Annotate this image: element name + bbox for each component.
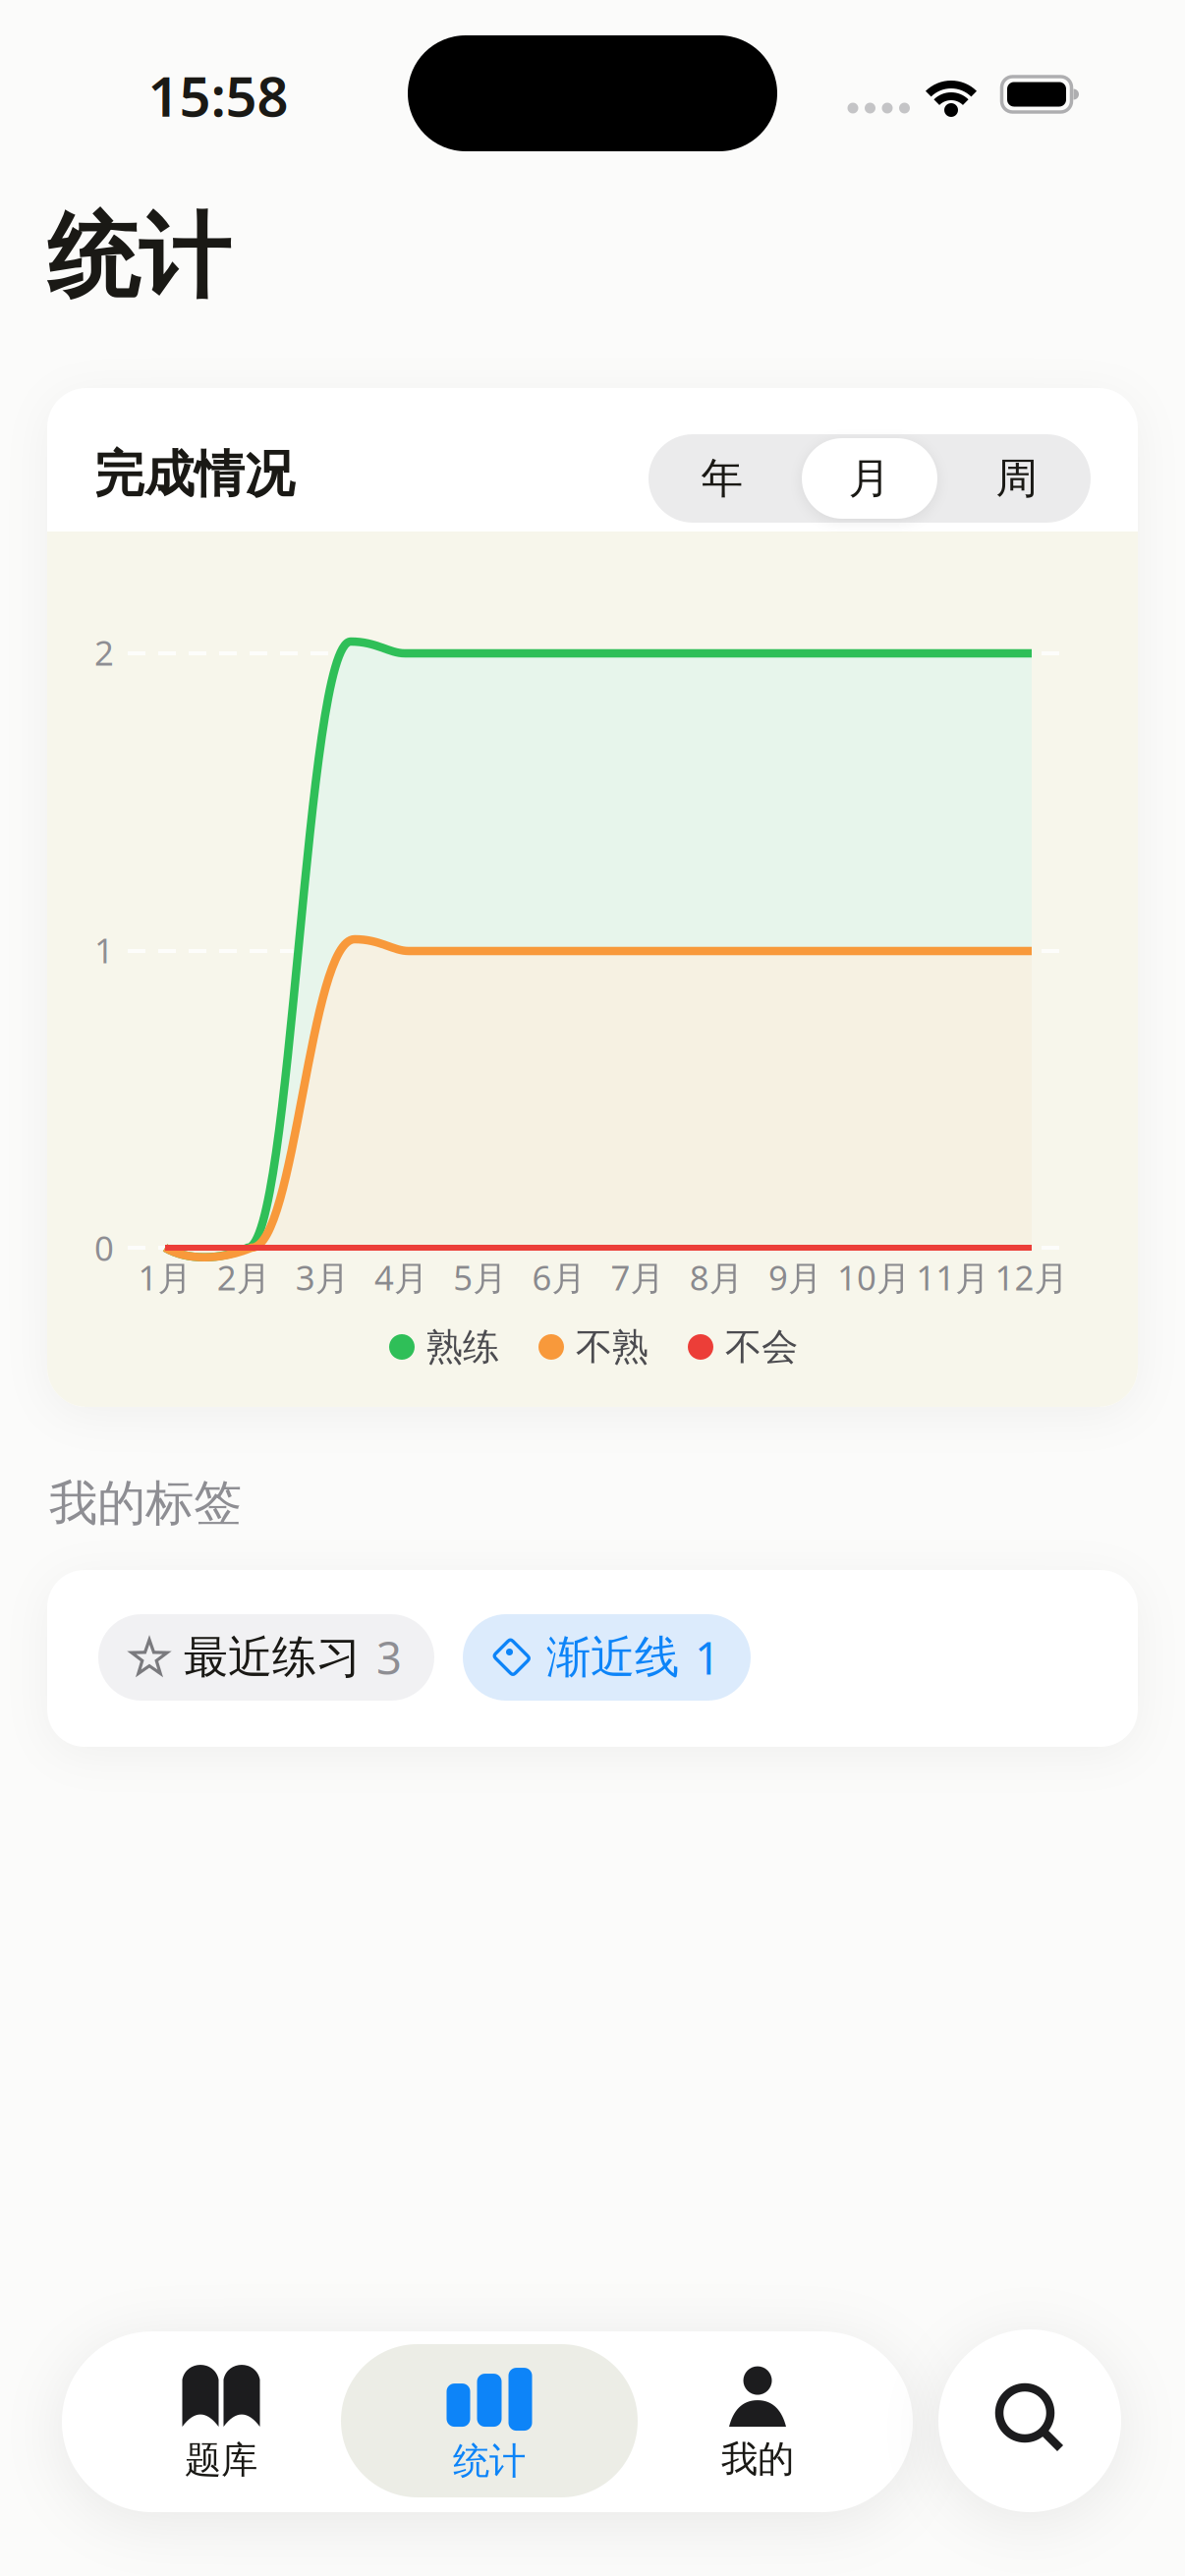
staticText: 11月 [916, 1255, 990, 1300]
staticText: 统计 [453, 2439, 526, 2484]
staticText: 题库 [185, 2438, 257, 2483]
staticText: 12月 [995, 1255, 1069, 1300]
staticText: 1 [94, 927, 114, 973]
button[interactable]: 搜索 [938, 2329, 1121, 2512]
staticText: 熟练 [426, 1324, 499, 1370]
staticText: 2 [94, 630, 114, 675]
button[interactable]: 统计 [341, 2337, 638, 2504]
staticText: 周 [996, 453, 1038, 504]
button[interactable]: 最近练习 [98, 1614, 434, 1701]
staticText: 完成情况 [94, 444, 295, 505]
staticText: 不熟 [576, 1324, 649, 1370]
button[interactable]: 题库 [88, 2340, 354, 2507]
staticText: 4月 [374, 1255, 428, 1300]
staticText: 6月 [532, 1255, 586, 1300]
staticText: 不会 [725, 1324, 798, 1370]
staticText: 5月 [453, 1255, 507, 1300]
staticText: 我的 [721, 2437, 794, 2482]
staticText: 1 [695, 1628, 720, 1687]
staticText: 7月 [611, 1255, 665, 1300]
button[interactable]: 周 [943, 434, 1091, 523]
button[interactable]: 月 [796, 434, 943, 523]
button[interactable]: 渐近线 [463, 1614, 751, 1701]
staticText: 3 [376, 1628, 402, 1687]
staticText: 我的标签 [49, 1473, 242, 1533]
staticText: 15:58 [148, 59, 288, 132]
staticText: 3月 [296, 1255, 350, 1300]
staticText: 渐近线 [546, 1630, 679, 1685]
staticText: 8月 [690, 1255, 744, 1300]
staticText: 2月 [217, 1255, 271, 1300]
button[interactable]: 年 [649, 434, 796, 523]
staticText: 统计 [47, 201, 230, 314]
staticText: 9月 [768, 1255, 822, 1300]
button[interactable]: 我的 [625, 2340, 890, 2507]
staticText: 10月 [837, 1255, 911, 1300]
staticText: 年 [701, 453, 743, 504]
staticText: 月 [848, 453, 891, 504]
staticText: 1月 [138, 1255, 192, 1300]
staticText: 0 [94, 1225, 114, 1270]
staticText: 最近练习 [184, 1630, 361, 1685]
